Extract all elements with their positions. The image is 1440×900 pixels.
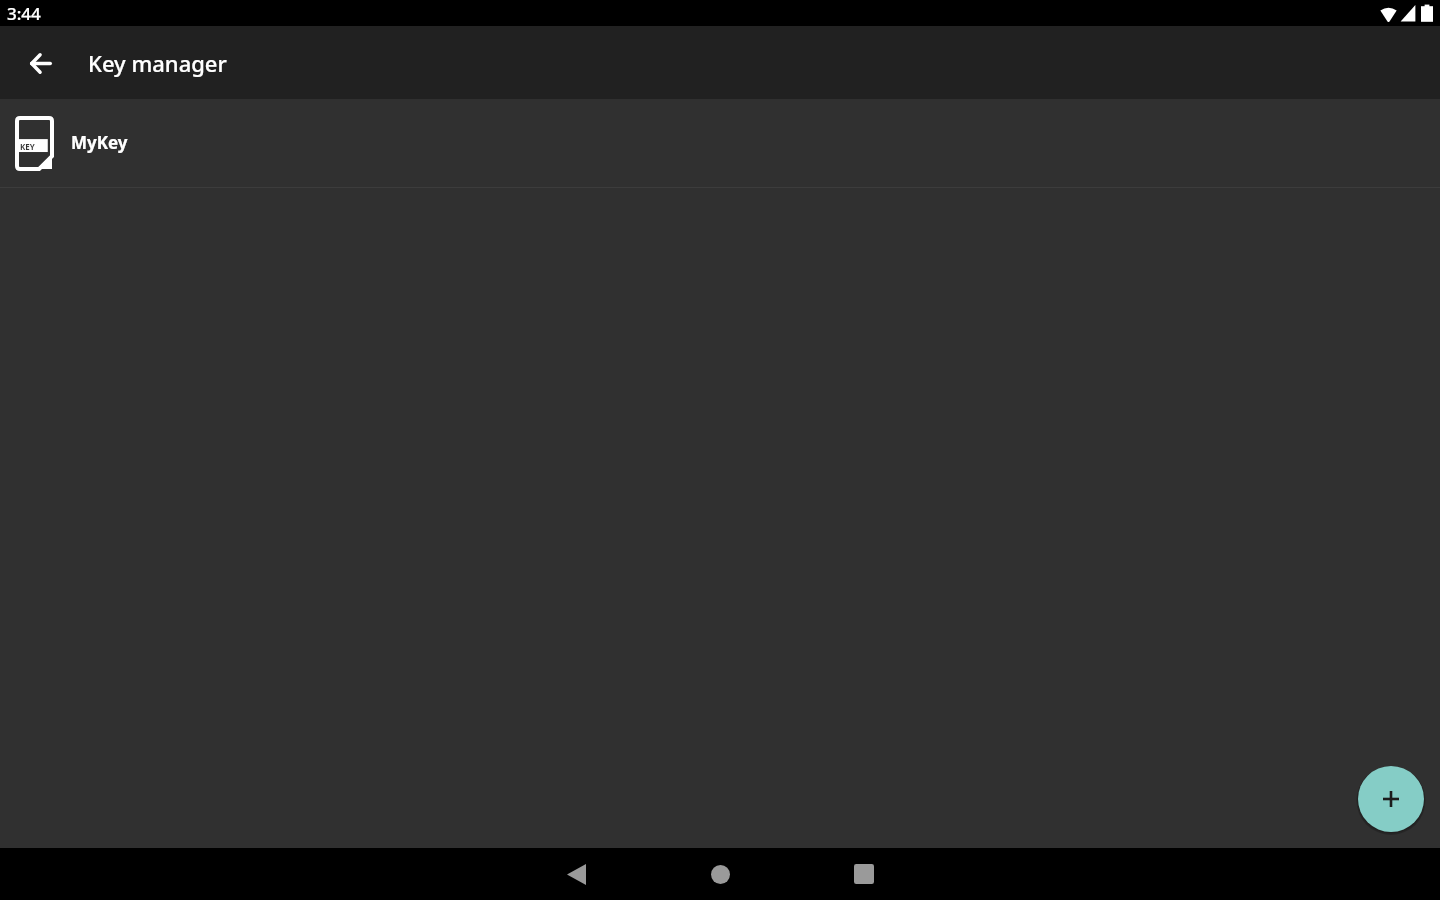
button[interactable]: Back: [534, 848, 618, 900]
staticText: KEY: [20, 141, 35, 152]
button[interactable]: KEY: [0, 99, 1440, 187]
staticText: Key manager: [88, 48, 227, 78]
button[interactable]: Recent apps: [822, 848, 906, 900]
button[interactable]: Add key: [1356, 764, 1426, 834]
staticText: MyKey: [71, 131, 128, 154]
staticText: 3:44: [7, 2, 41, 25]
button[interactable]: Home: [678, 848, 762, 900]
button[interactable]: Navigate up: [14, 36, 68, 90]
